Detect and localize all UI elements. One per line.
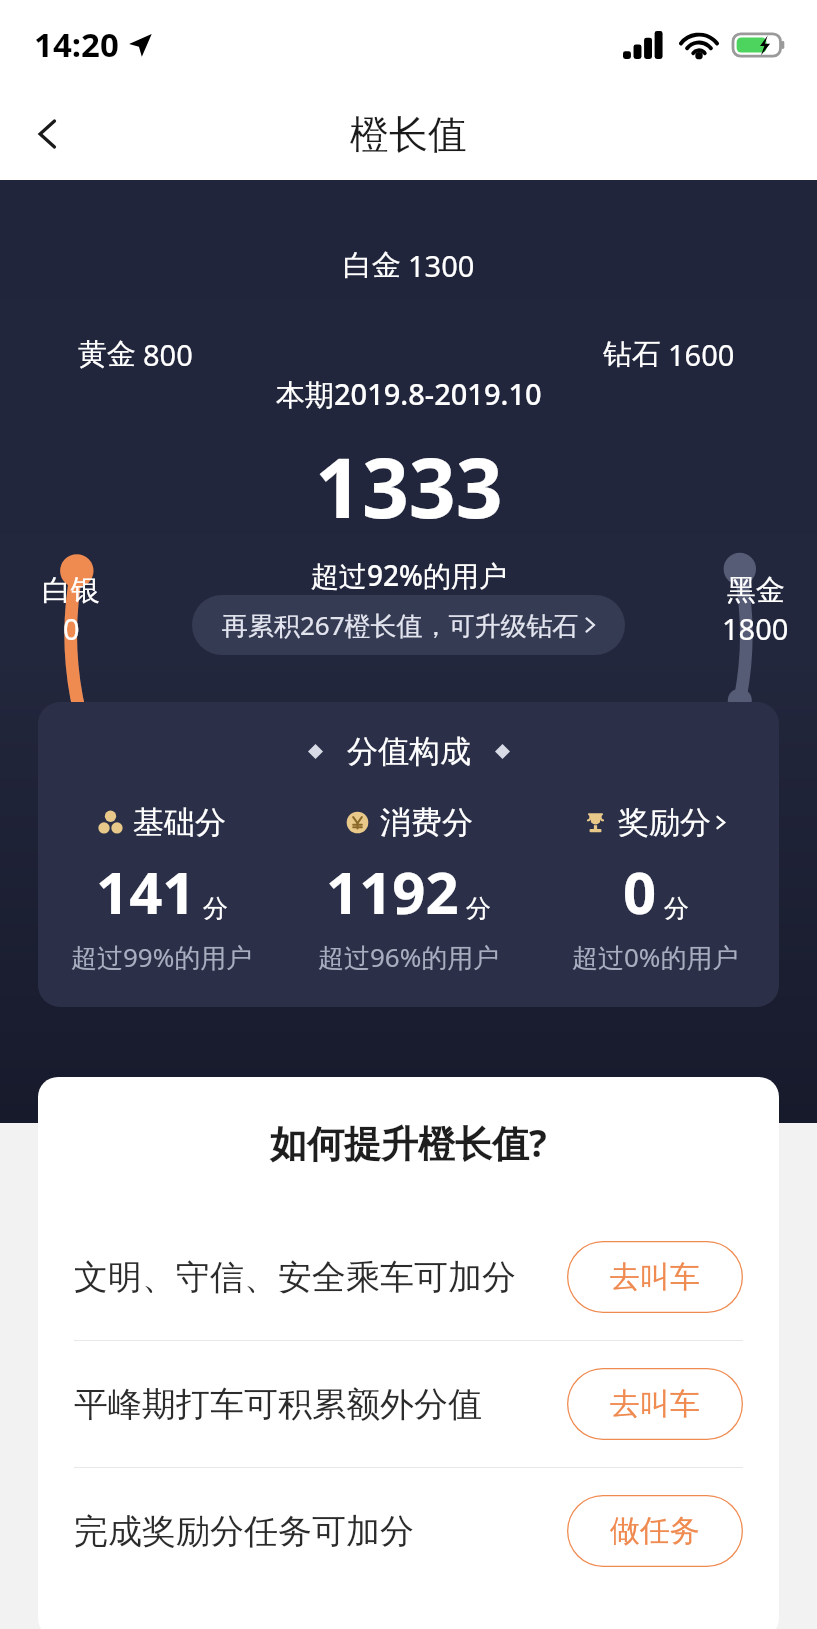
button[interactable]: Back [16,102,80,166]
staticText: 1600 [668,335,735,374]
staticText: 0 [63,609,80,648]
staticText: 分 [664,893,689,924]
staticText: 黄金 [78,336,136,373]
staticText: 1192 [326,852,459,931]
staticText: 1333 [315,430,503,542]
staticText: 钻石 [603,336,661,373]
staticText: 消费分 [380,803,473,842]
staticText: 完成奖励分任务可加分 [74,1510,553,1553]
button[interactable]: 完成奖励分任务可加分 [74,1468,743,1594]
staticText: 分值构成 [347,732,471,771]
staticText: 基础分 [133,803,226,842]
button[interactable]: 做任务 [567,1495,743,1567]
staticText: 去叫车 [610,1258,700,1296]
staticText: 1300 [408,246,475,285]
staticText: 文明、守信、安全乘车可加分 [74,1256,553,1299]
staticText: 去叫车 [610,1385,700,1423]
button[interactable]: 去叫车 [567,1241,743,1313]
button[interactable]: 奖励分 [532,803,779,975]
staticText: 0 [623,852,657,931]
staticText: 平峰期打车可积累额外分值 [74,1383,553,1426]
staticText: 超过92%的用户 [311,556,507,594]
staticText: 141 [96,852,196,931]
staticText: 分 [203,893,228,924]
button[interactable]: 基础分 [38,803,285,975]
staticText: 做任务 [610,1512,700,1550]
staticText: 黑金 [727,572,785,609]
staticText: 分 [466,893,491,924]
staticText: 14:20 [34,22,119,67]
staticText: 再累积267橙长值，可升级钻石 [222,607,579,643]
button[interactable]: 文明、守信、安全乘车可加分 [74,1214,743,1340]
staticText: 1800 [722,609,789,648]
button[interactable]: 去叫车 [567,1368,743,1440]
staticText: 橙长值 [350,110,467,159]
staticText: 超过96%的用户 [318,939,500,975]
staticText: 白金 [343,247,401,284]
staticText: 如何提升橙长值? [270,1117,547,1168]
staticText: 800 [143,335,193,374]
staticText: 白银 [42,572,100,609]
button[interactable]: 再累积267橙长值，可升级钻石 [192,595,625,655]
staticText: 奖励分 [618,803,711,842]
staticText: 本期2019.8-2019.10 [276,374,542,414]
button[interactable]: 平峰期打车可积累额外分值 [74,1341,743,1467]
staticText: 超过99%的用户 [71,939,253,975]
button[interactable]: 分值构成 [38,702,779,1007]
button[interactable]: 消费分 [285,803,532,975]
staticText: 超过0%的用户 [572,939,739,975]
